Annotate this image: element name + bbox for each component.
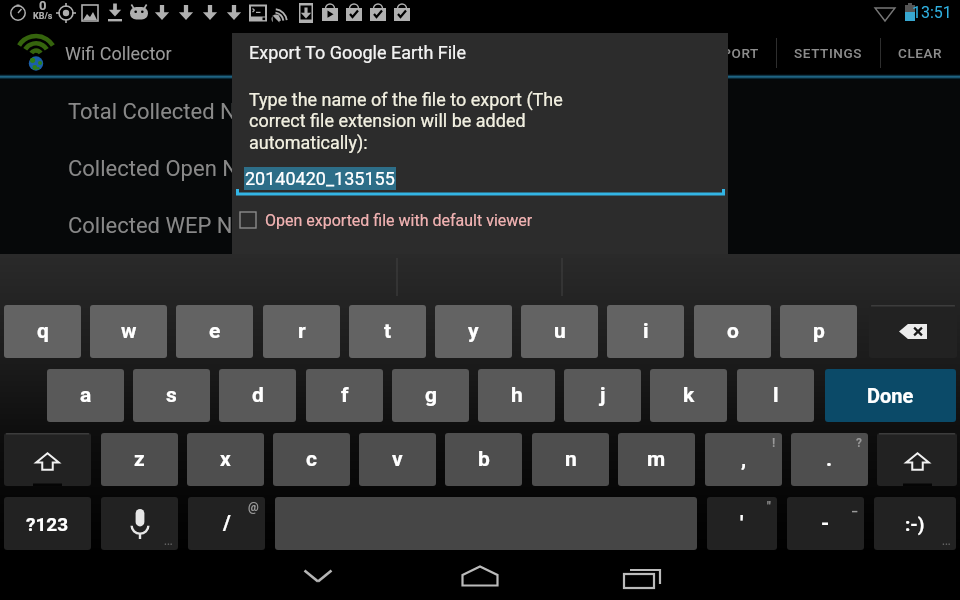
- staticText: ": [767, 500, 771, 514]
- button[interactable]: p: [780, 305, 857, 358]
- staticText: 20140420_135155: [245, 168, 395, 189]
- staticText: a: [80, 383, 92, 408]
- button[interactable]: STOP: [616, 26, 687, 79]
- button[interactable]: t: [349, 305, 426, 358]
- button[interactable]: n: [532, 433, 609, 486]
- staticText: SETTINGS: [794, 45, 863, 61]
- button[interactable]: x: [187, 433, 264, 486]
- staticText: f: [341, 383, 349, 408]
- staticText: ...: [942, 536, 951, 548]
- button[interactable]: Hide keyboard: [278, 552, 358, 600]
- staticText: g: [425, 383, 437, 408]
- staticText: s: [166, 383, 177, 408]
- staticText: EXPORT: [705, 45, 759, 61]
- button[interactable]: j: [564, 369, 641, 422]
- button[interactable]: -: [787, 497, 864, 550]
- staticText: y: [468, 319, 479, 344]
- staticText: u: [554, 319, 566, 344]
- staticText: x: [220, 447, 231, 472]
- staticText: .: [826, 447, 833, 472]
- staticText: Wifi Collector: [65, 43, 172, 64]
- button[interactable]: /: [188, 497, 265, 550]
- staticText: ?123: [26, 513, 69, 535]
- staticText: Total Collected Networks: [68, 99, 314, 125]
- staticText: Export To Google Earth File: [249, 42, 467, 63]
- button[interactable]: Home: [440, 552, 520, 600]
- button[interactable]: b: [445, 433, 522, 486]
- staticText: CLEAR: [898, 45, 943, 61]
- staticText: z: [134, 447, 145, 472]
- button[interactable]: r: [263, 305, 340, 358]
- button[interactable]: h: [478, 369, 555, 422]
- button[interactable]: y: [435, 305, 512, 358]
- staticText: h: [511, 383, 523, 408]
- button[interactable]: .: [791, 433, 868, 486]
- button[interactable]: f: [306, 369, 383, 422]
- button[interactable]: l: [737, 369, 814, 422]
- button[interactable]: CLEAR: [881, 26, 960, 79]
- button[interactable]: Shift: [877, 433, 957, 486]
- button[interactable]: Recent apps: [600, 552, 680, 600]
- button[interactable]: SETTINGS: [777, 26, 880, 79]
- staticText: 13:51: [912, 3, 952, 22]
- staticText: q: [37, 319, 49, 344]
- button[interactable]: ': [707, 497, 777, 550]
- staticText: KB/s: [33, 11, 53, 22]
- button[interactable]: z: [101, 433, 178, 486]
- button[interactable]: EXPORT: [688, 26, 776, 79]
- staticText: /: [223, 511, 231, 536]
- staticText: l: [773, 383, 779, 408]
- staticText: _: [852, 500, 858, 514]
- staticText: ...: [164, 536, 173, 548]
- staticText: p: [813, 319, 825, 344]
- button[interactable]: o: [694, 305, 771, 358]
- staticText: @: [248, 500, 259, 514]
- staticText: o: [727, 319, 739, 344]
- button[interactable]: Voice input: [101, 497, 178, 550]
- button[interactable]: q: [4, 305, 81, 358]
- staticText: j: [600, 383, 606, 408]
- button[interactable]: a: [47, 369, 124, 422]
- button[interactable]: Open exported file with default viewer: [235, 208, 533, 232]
- button[interactable]: ?123: [4, 497, 91, 550]
- button[interactable]: v: [359, 433, 436, 486]
- button[interactable]: u: [521, 305, 598, 358]
- staticText: Open exported file with default viewer: [265, 211, 533, 230]
- staticText: Collected Open Networks: [68, 156, 316, 182]
- staticText: r: [298, 319, 306, 344]
- button[interactable]: g: [392, 369, 469, 422]
- button[interactable]: k: [650, 369, 727, 422]
- staticText: Type the name of the file to export (The…: [249, 89, 563, 154]
- staticText: d: [252, 383, 264, 408]
- staticText: ,: [741, 447, 747, 472]
- button[interactable]: m: [618, 433, 695, 486]
- button[interactable]: Shift: [4, 433, 91, 486]
- button[interactable]: s: [133, 369, 210, 422]
- staticText: k: [683, 383, 695, 408]
- staticText: c: [306, 447, 317, 472]
- staticText: b: [478, 447, 490, 472]
- button[interactable]: :-): [874, 497, 956, 550]
- staticText: :-): [905, 513, 925, 535]
- staticText: ?: [856, 436, 862, 450]
- button[interactable]: c: [273, 433, 350, 486]
- staticText: n: [565, 447, 577, 472]
- button[interactable]: e: [176, 305, 253, 358]
- button[interactable]: Done: [825, 369, 956, 422]
- button[interactable]: i: [607, 305, 684, 358]
- staticText: t: [384, 319, 392, 344]
- button[interactable]: ,: [705, 433, 782, 486]
- button[interactable]: w: [90, 305, 167, 358]
- staticText: Collected WEP Networks: [68, 213, 311, 239]
- staticText: i: [643, 319, 649, 344]
- staticText: ': [740, 511, 744, 536]
- staticText: !: [772, 436, 776, 450]
- button[interactable]: Backspace: [869, 305, 957, 358]
- staticText: -: [821, 511, 830, 536]
- staticText: w: [121, 319, 137, 344]
- staticText: Done: [867, 384, 914, 407]
- button[interactable]: d: [219, 369, 296, 422]
- staticText: v: [392, 447, 403, 472]
